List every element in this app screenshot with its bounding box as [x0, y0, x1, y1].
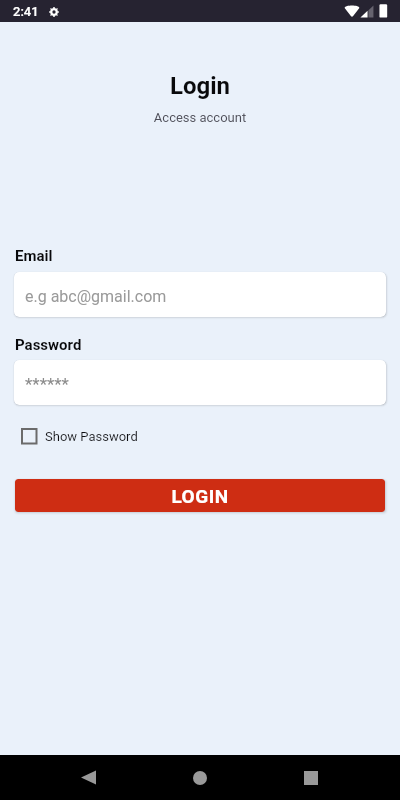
staticText: e.g abc@gmail.com	[25, 287, 167, 306]
staticText: Password	[15, 336, 82, 354]
button[interactable]: Home	[176, 755, 224, 800]
staticText: LOGIN	[171, 485, 229, 507]
button[interactable]: ******	[14, 360, 386, 405]
other: Settings	[49, 7, 59, 17]
button[interactable]: Recent apps	[287, 755, 335, 800]
staticText: ******	[25, 374, 69, 394]
staticText: 2:41	[13, 4, 39, 19]
button[interactable]: LOGIN	[15, 479, 385, 512]
button[interactable]: e.g abc@gmail.com	[14, 272, 386, 317]
staticText: Email	[15, 247, 53, 265]
staticText: Login	[0, 72, 400, 100]
staticText: Show Password	[45, 429, 138, 444]
staticText: Access account	[0, 110, 400, 125]
button[interactable]: Back	[64, 755, 112, 800]
button[interactable]: Show Password	[14, 424, 138, 449]
